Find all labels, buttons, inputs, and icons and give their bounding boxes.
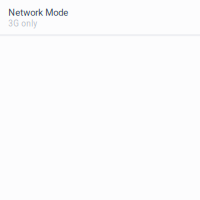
button[interactable]: Network Mode [0,0,200,34]
staticText: 3G only [8,19,37,29]
staticText: Network Mode [8,7,68,18]
